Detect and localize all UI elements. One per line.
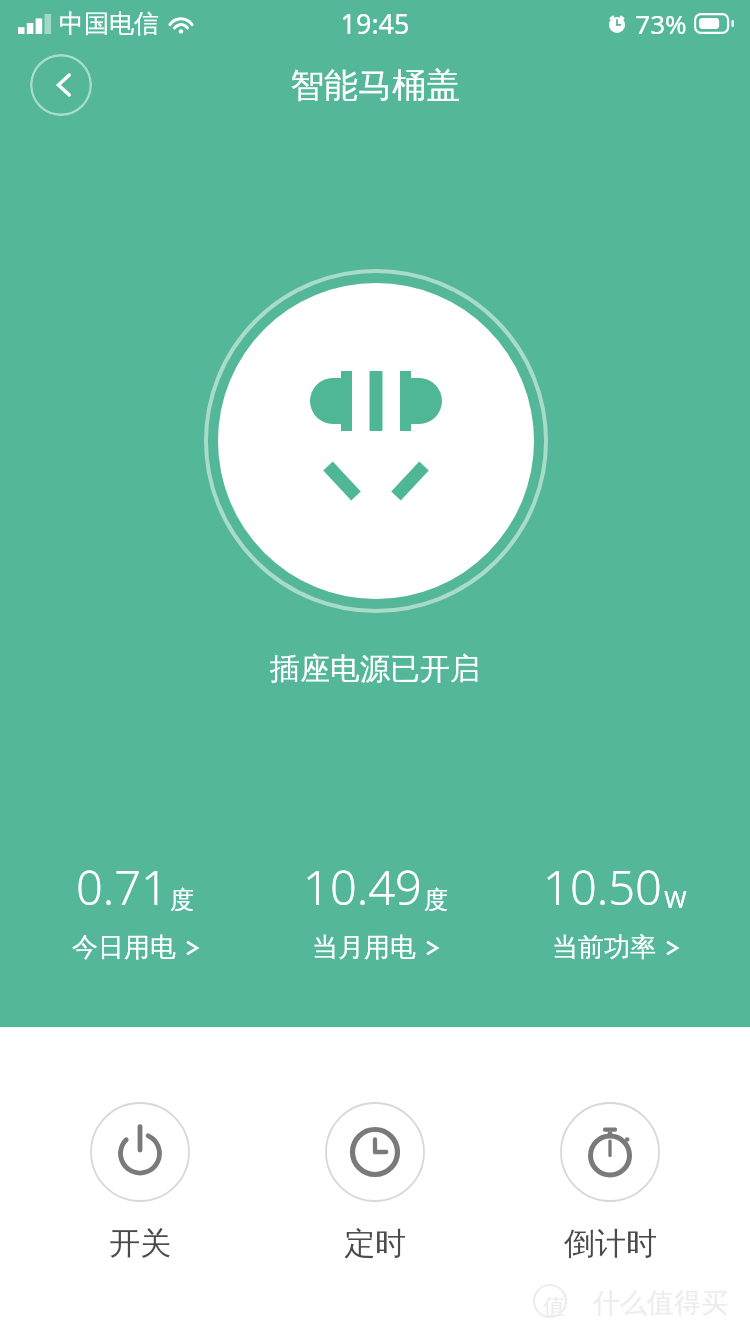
staticText: 10.50 [543, 855, 662, 919]
staticText: 0.71 [76, 855, 168, 919]
staticText: 10.49 [303, 855, 422, 919]
staticText: 73% [635, 6, 687, 41]
staticText: 中国电信 [59, 8, 159, 39]
staticText: 当月用电 [312, 931, 416, 964]
staticText: 插座电源已开启 [270, 650, 480, 688]
staticText: W [664, 882, 687, 915]
staticText: 定时 [344, 1224, 406, 1263]
staticText: 值 [543, 1293, 565, 1321]
staticText: 度 [170, 885, 194, 915]
staticText: 什么值得买 [593, 1286, 728, 1320]
button[interactable]: 10.49 [270, 855, 480, 964]
button[interactable]: 10.50 [510, 855, 720, 964]
staticText: 当前功率 [552, 931, 656, 964]
staticText: 今日用电 [72, 931, 176, 964]
button[interactable]: Back [30, 54, 92, 116]
button[interactable]: 开关 [45, 1102, 235, 1263]
button[interactable]: Socket power toggle [186, 251, 566, 631]
button[interactable]: 倒计时 [515, 1102, 705, 1263]
button[interactable]: 定时 [280, 1102, 470, 1263]
staticText: 开关 [109, 1224, 171, 1263]
staticText: 19:45 [340, 5, 410, 42]
staticText: 倒计时 [564, 1224, 657, 1263]
staticText: 度 [424, 885, 448, 915]
staticText: 智能马桶盖 [290, 64, 460, 107]
button[interactable]: 0.71 [30, 855, 240, 964]
